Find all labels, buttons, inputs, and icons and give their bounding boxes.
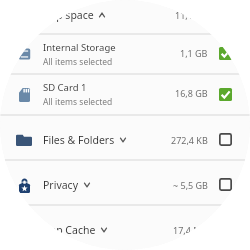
staticText: 17,4 MB xyxy=(173,224,208,236)
staticText: App space xyxy=(43,8,94,22)
staticText: All items selected xyxy=(43,96,113,108)
button[interactable]: Not selected xyxy=(219,133,232,146)
button[interactable]: App space xyxy=(0,0,250,33)
staticText: 1,1 GB xyxy=(180,47,208,59)
staticText: Internal Storage xyxy=(43,41,116,54)
button[interactable]: Selected xyxy=(219,88,232,101)
button[interactable]: App Cache xyxy=(0,206,250,250)
staticText: 272,4 KB xyxy=(171,134,208,146)
button[interactable]: Not selected xyxy=(219,178,232,191)
button[interactable]: Privacy xyxy=(0,161,250,204)
staticText: All items selected xyxy=(43,56,113,68)
button[interactable]: Internal Storage xyxy=(0,35,250,73)
button[interactable]: SD Card 1 xyxy=(0,75,250,114)
staticText: ~ 5,5 GB xyxy=(173,179,208,191)
staticText: Privacy xyxy=(43,178,79,192)
staticText: 11,1 GB xyxy=(175,9,208,21)
staticText: App Cache xyxy=(43,223,96,237)
staticText: 16,8 GB xyxy=(175,87,208,99)
button[interactable]: Files & Folders xyxy=(0,116,250,159)
staticText: SD Card 1 xyxy=(43,81,87,94)
staticText: Files & Folders xyxy=(43,133,115,147)
button[interactable]: Selected xyxy=(219,47,232,60)
